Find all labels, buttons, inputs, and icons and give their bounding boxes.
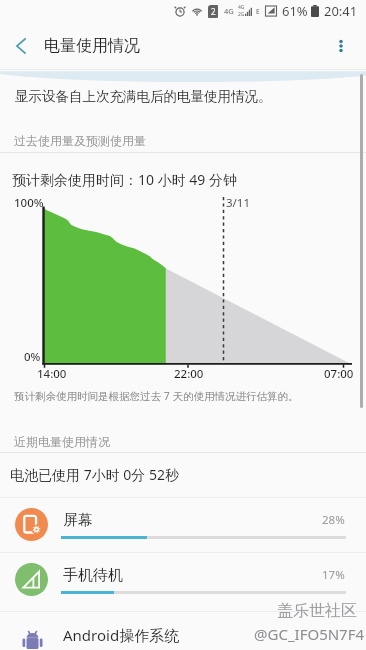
- staticText: 20:41: [324, 2, 358, 20]
- staticText: 28%: [322, 512, 345, 528]
- staticText: 14:00: [37, 366, 67, 382]
- staticText: 盖乐世社区: [277, 601, 357, 621]
- staticText: 100%: [14, 195, 44, 211]
- staticText: 0%: [24, 349, 41, 365]
- staticText: 显示设备自上次充满电后的电量使用情况。: [15, 88, 272, 105]
- staticText: 电池已使用 7小时 0分 52秒: [10, 465, 179, 484]
- button[interactable]: 屏幕: [0, 497, 366, 552]
- staticText: E: [256, 7, 260, 16]
- button[interactable]: More options: [319, 22, 363, 70]
- staticText: 22:00: [174, 366, 204, 382]
- staticText: 3/11: [226, 195, 251, 211]
- staticText: 预计剩余使用时间是根据您过去 7 天的使用情况进行估算的。: [14, 389, 299, 403]
- staticText: 电量使用情况: [44, 36, 140, 56]
- staticText: 屏幕: [63, 511, 93, 530]
- staticText: 过去使用量及预测使用量: [14, 133, 146, 148]
- staticText: 手机待机: [63, 566, 123, 585]
- staticText: 预计剩余使用时间：10 小时 49 分钟: [12, 170, 237, 189]
- button[interactable]: 手机待机: [0, 552, 366, 607]
- staticText: 2G: [238, 11, 245, 18]
- staticText: @GC_IFO5N7F4: [254, 624, 365, 644]
- staticText: 4G: [238, 4, 245, 11]
- staticText: 61%: [282, 2, 308, 20]
- staticText: 2: [211, 6, 216, 17]
- staticText: Android操作系统: [63, 625, 180, 645]
- staticText: 07:00: [324, 366, 354, 382]
- staticText: 17%: [322, 567, 345, 583]
- button[interactable]: Back: [0, 22, 40, 70]
- button[interactable]: Android操作系统: [0, 611, 366, 650]
- staticText: 4G: [224, 6, 234, 16]
- staticText: 近期电量使用情况: [14, 434, 110, 449]
